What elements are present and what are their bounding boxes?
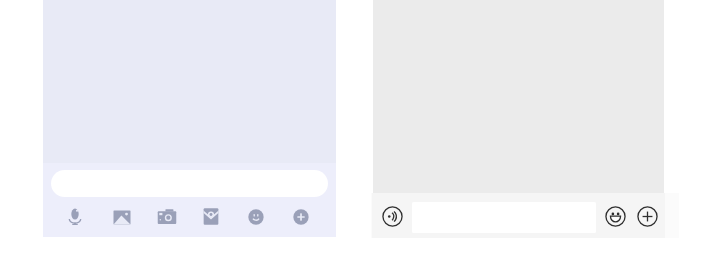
button[interactable]: Sticker [195,201,227,233]
button[interactable]: Emoji [600,201,630,231]
button[interactable]: Add [632,201,662,231]
button[interactable]: More [285,201,317,233]
button[interactable]: Camera [151,201,183,233]
button[interactable]: Gallery [106,201,138,233]
button[interactable]: Voice [377,201,407,231]
button[interactable]: Emoji [240,201,272,233]
button[interactable]: Voice message [59,201,91,233]
